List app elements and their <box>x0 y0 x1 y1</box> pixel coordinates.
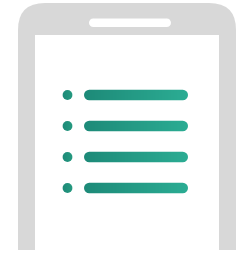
button[interactable]: Mobile device showing a list of items <box>0 0 250 256</box>
